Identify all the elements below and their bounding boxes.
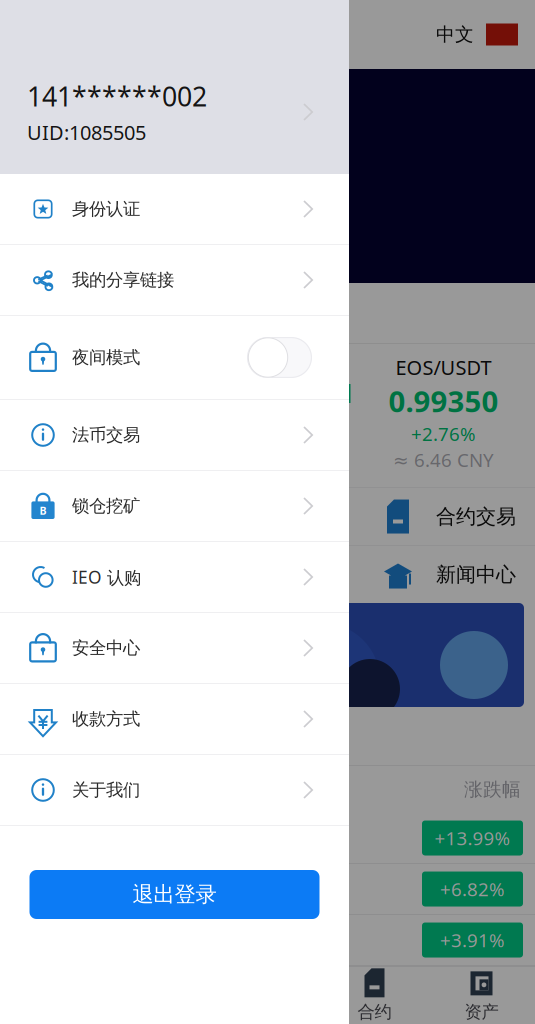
- staticText: +6.82%: [440, 877, 505, 901]
- staticText: B: [39, 503, 46, 518]
- button[interactable]: 关于我们: [0, 755, 349, 826]
- button[interactable]: 新闻中心: [0, 546, 535, 603]
- button[interactable]: 141******002: [0, 0, 349, 174]
- staticText: +3.91%: [440, 928, 505, 952]
- staticText: 涨跌幅: [464, 778, 521, 801]
- staticText: 合约: [357, 1001, 391, 1023]
- staticText: 退出登录: [132, 881, 216, 908]
- staticText: 合约交易: [436, 504, 516, 529]
- button[interactable]: 收款方式: [0, 684, 349, 755]
- staticText: ≈ 6.46 CNY: [393, 447, 494, 472]
- button[interactable]: 身份认证: [0, 174, 349, 245]
- staticText: 0.99350: [388, 381, 498, 420]
- staticText: IEO 认购: [72, 565, 141, 588]
- staticText: 中文: [436, 23, 474, 46]
- staticText: 141******002: [27, 78, 207, 114]
- staticText: +2.76%: [411, 421, 476, 446]
- staticText: 法币交易: [72, 424, 140, 446]
- button[interactable]: B: [0, 471, 349, 542]
- staticText: 我的分享链接: [72, 269, 174, 291]
- button[interactable]: 退出登录: [29, 870, 319, 919]
- button[interactable]: 安全中心: [0, 613, 349, 684]
- staticText: 安全中心: [72, 637, 140, 659]
- staticText: 夜间模式: [72, 347, 140, 368]
- button[interactable]: 资产: [428, 967, 535, 1024]
- staticText: EOS/USDT: [395, 354, 491, 381]
- staticText: 身份认证: [72, 198, 140, 220]
- staticText: 新闻中心: [436, 562, 516, 587]
- staticText: +13.99%: [434, 826, 510, 850]
- staticText: 资产: [464, 1001, 498, 1023]
- button[interactable]: 合约: [321, 967, 428, 1024]
- button[interactable]: 合约交易: [0, 488, 535, 545]
- button[interactable]: 夜间模式: [0, 316, 349, 400]
- staticText: 关于我们: [72, 779, 140, 801]
- button[interactable]: IEO 认购: [0, 542, 349, 613]
- staticText: 锁仓挖矿: [72, 495, 140, 517]
- button[interactable]: 法币交易: [0, 400, 349, 471]
- button[interactable]: 我的分享链接: [0, 245, 349, 316]
- staticText: 收款方式: [72, 708, 140, 730]
- staticText: UID:1085505: [27, 119, 146, 145]
